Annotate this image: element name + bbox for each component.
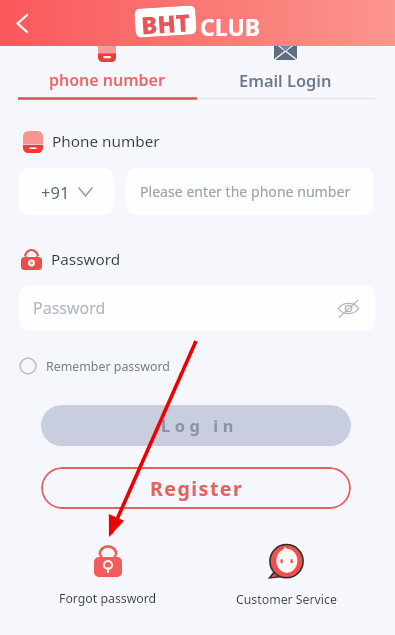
staticText: Phone number bbox=[52, 131, 160, 152]
button[interactable]: Customer Service bbox=[221, 543, 352, 615]
button[interactable]: Password bbox=[19, 285, 375, 331]
button[interactable]: Email Login bbox=[196, 46, 375, 96]
staticText: Password bbox=[51, 249, 121, 270]
button[interactable]: Forgot password bbox=[42, 545, 173, 615]
button[interactable]: phone number bbox=[18, 46, 196, 96]
staticText: Email Login bbox=[239, 69, 332, 91]
staticText: Log in bbox=[161, 415, 238, 437]
button[interactable]: Log in bbox=[41, 405, 351, 446]
staticText: Password bbox=[33, 297, 106, 319]
staticText: Please enter the phone number bbox=[140, 182, 351, 201]
button[interactable]: +91 bbox=[19, 168, 114, 215]
staticText: Register bbox=[150, 475, 244, 502]
button[interactable]: Back bbox=[0, 0, 44, 46]
button[interactable]: Remember password bbox=[19, 356, 170, 376]
staticText: CLUB bbox=[200, 11, 261, 42]
button[interactable]: Show password bbox=[335, 295, 361, 321]
staticText: Customer Service bbox=[236, 591, 337, 608]
button[interactable]: Please enter the phone number bbox=[126, 168, 374, 215]
button[interactable]: Register bbox=[41, 467, 351, 509]
staticText: phone number bbox=[49, 69, 165, 91]
staticText: +91 bbox=[41, 181, 70, 203]
staticText: Remember password bbox=[46, 358, 170, 375]
staticText: Forgot password bbox=[59, 590, 157, 607]
staticText: BHT bbox=[140, 5, 191, 37]
